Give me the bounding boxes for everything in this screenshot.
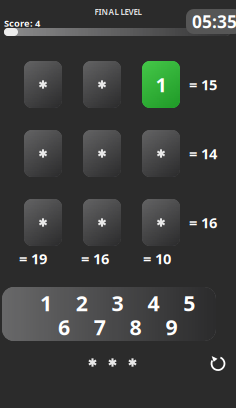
- staticText: = 16: [81, 249, 109, 268]
- button[interactable]: [142, 130, 180, 177]
- staticText: 8: [130, 313, 142, 341]
- staticText: 1: [40, 289, 52, 317]
- staticText: 4: [147, 289, 159, 317]
- staticText: 1: [155, 71, 166, 98]
- staticText: 2: [76, 289, 88, 317]
- button[interactable]: 7: [88, 316, 112, 338]
- staticText: FINAL LEVEL: [94, 7, 141, 17]
- button[interactable]: [24, 199, 62, 246]
- staticText: Score: 4: [4, 17, 40, 29]
- staticText: 05:35: [192, 10, 236, 33]
- staticText: 7: [94, 313, 106, 341]
- staticText: 6: [58, 313, 70, 341]
- staticText: = 19: [19, 249, 47, 268]
- button[interactable]: [83, 130, 121, 177]
- button[interactable]: 2: [70, 292, 94, 314]
- button[interactable]: 3: [106, 292, 130, 314]
- staticText: 9: [165, 313, 177, 341]
- button[interactable]: [83, 61, 121, 108]
- button[interactable]: 9: [159, 316, 183, 338]
- button[interactable]: [24, 61, 62, 108]
- button[interactable]: 1: [142, 61, 180, 108]
- staticText: = 14: [189, 144, 217, 163]
- staticText: = 10: [143, 249, 171, 268]
- staticText: 3: [112, 289, 124, 317]
- button[interactable]: [24, 130, 62, 177]
- button[interactable]: 4: [141, 292, 165, 314]
- button[interactable]: 6: [52, 316, 76, 338]
- staticText: = 15: [189, 75, 217, 94]
- button[interactable]: 5: [177, 292, 201, 314]
- button[interactable]: Restart: [205, 350, 231, 376]
- button[interactable]: [83, 199, 121, 246]
- button[interactable]: 1: [34, 292, 58, 314]
- staticText: = 16: [189, 213, 217, 232]
- staticText: 5: [183, 289, 195, 317]
- button[interactable]: 8: [124, 316, 148, 338]
- button[interactable]: [142, 199, 180, 246]
